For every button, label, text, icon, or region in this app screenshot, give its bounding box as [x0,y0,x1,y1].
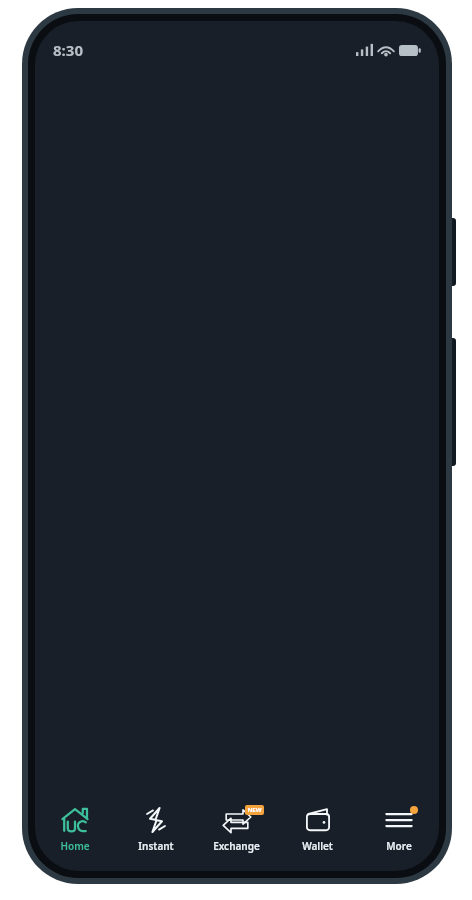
button[interactable]: NEW [196,795,277,863]
button[interactable]: Home [35,795,115,863]
staticText: Instant [138,839,174,853]
button[interactable]: Wallet [277,795,358,863]
staticText: NEW [247,806,262,814]
staticText: Home [60,839,90,853]
button[interactable]: Instant [115,795,196,863]
staticText: 8:30 [53,40,83,60]
staticText: More [386,839,412,853]
staticText: Wallet [302,839,333,853]
button[interactable]: More [358,795,439,863]
staticText: Exchange [213,839,260,853]
